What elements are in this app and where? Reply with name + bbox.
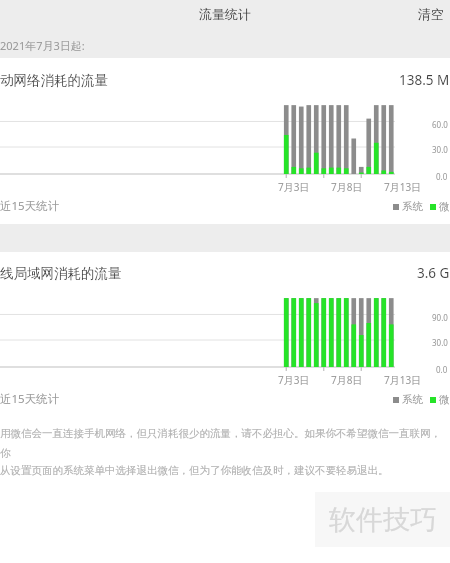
button[interactable]: 动网络消耗的流量 xyxy=(0,68,450,92)
staticText: 用微信会一直连接手机网络，但只消耗很少的流量，请不必担心。如果你不希望微信一直联… xyxy=(0,427,450,460)
staticText: 从设置页面的系统菜单中选择退出微信，但为了你能收信及时，建议不要轻易退出。 xyxy=(0,464,389,477)
staticText: 系统 xyxy=(402,393,423,406)
staticText: 清空 xyxy=(418,6,444,22)
staticText: 7月3日 xyxy=(278,180,310,194)
staticText: 系统 xyxy=(402,200,423,213)
staticText: 流量统计 xyxy=(199,6,251,22)
button[interactable]: 清空 xyxy=(412,2,450,26)
staticText: 3.6 G xyxy=(417,264,450,282)
staticText: 90.0 xyxy=(432,312,448,323)
staticText: 近15天统计 xyxy=(0,391,60,407)
staticText: 30.0 xyxy=(432,144,448,155)
staticText: 7月13日 xyxy=(384,373,422,387)
staticText: 微 xyxy=(439,393,450,406)
staticText: 线局域网消耗的流量 xyxy=(0,265,122,282)
staticText: 2021年7月3日起: xyxy=(0,38,85,53)
staticText: 0.0 xyxy=(436,171,448,182)
staticText: 7月13日 xyxy=(384,180,422,194)
staticText: 动网络消耗的流量 xyxy=(0,72,108,89)
staticText: 7月8日 xyxy=(331,373,363,387)
staticText: 微 xyxy=(439,200,450,213)
staticText: 近15天统计 xyxy=(0,198,60,214)
staticText: 30.0 xyxy=(432,337,448,348)
staticText: 7月3日 xyxy=(278,373,310,387)
staticText: 0.0 xyxy=(436,364,448,375)
staticText: 60.0 xyxy=(432,119,448,130)
staticText: 138.5 M xyxy=(399,71,450,89)
staticText: 软件技巧 xyxy=(329,503,437,537)
staticText: 7月8日 xyxy=(331,180,363,194)
button[interactable]: 线局域网消耗的流量 xyxy=(0,261,450,285)
